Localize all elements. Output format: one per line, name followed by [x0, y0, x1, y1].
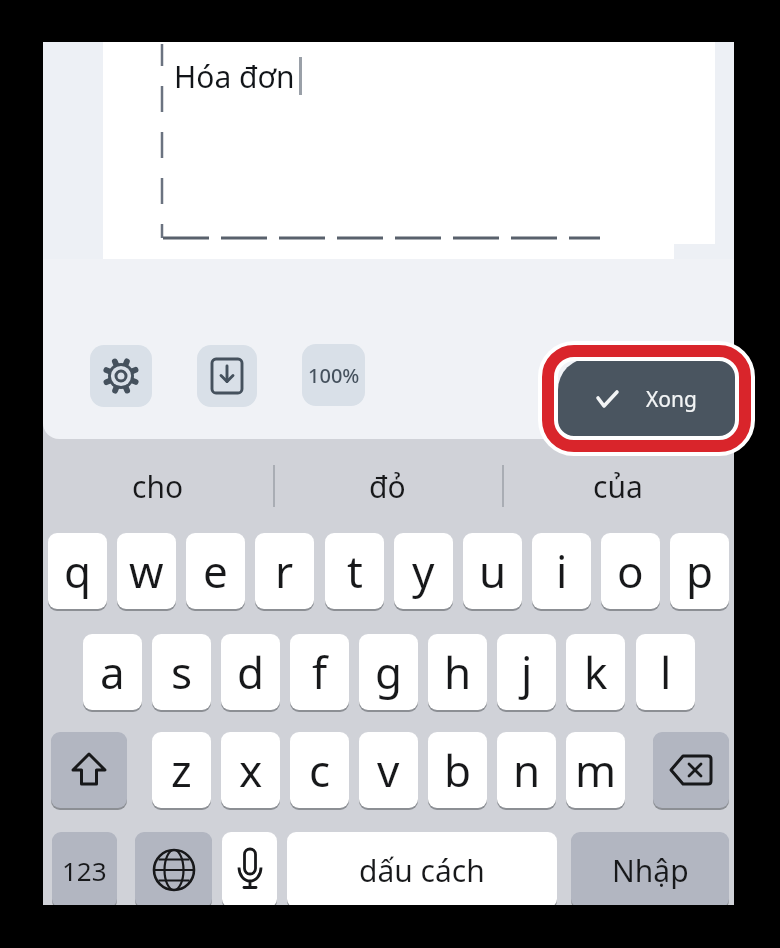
staticText: đỏ — [369, 466, 406, 507]
button[interactable]: c — [290, 732, 349, 808]
staticText: x — [239, 740, 263, 800]
button[interactable]: e — [186, 533, 245, 609]
staticText: f — [312, 642, 328, 702]
button[interactable]: u — [463, 533, 522, 609]
staticText: z — [171, 740, 192, 800]
button[interactable]: dấu cách — [287, 832, 557, 908]
button[interactable]: Nhập — [571, 832, 729, 908]
staticText: e — [203, 541, 228, 601]
staticText: cho — [132, 466, 184, 507]
button[interactable] — [653, 732, 729, 808]
button[interactable]: của — [502, 460, 734, 512]
staticText: Hóa đơn — [174, 56, 295, 96]
staticText: g — [375, 642, 403, 702]
staticText: h — [444, 642, 472, 702]
button[interactable]: h — [428, 634, 487, 710]
staticText: i — [556, 541, 568, 601]
button[interactable]: 100% — [302, 344, 365, 406]
button[interactable]: z — [152, 732, 211, 808]
button[interactable]: o — [601, 533, 660, 609]
button[interactable]: cho — [43, 460, 273, 512]
staticText: Nhập — [612, 850, 689, 891]
staticText: 100% — [308, 362, 360, 389]
button[interactable]: d — [221, 634, 280, 710]
button[interactable] — [222, 832, 277, 908]
staticText: của — [593, 466, 643, 507]
button[interactable]: s — [152, 634, 211, 710]
staticText: m — [575, 740, 617, 800]
button[interactable]: p — [670, 533, 729, 609]
button[interactable]: l — [636, 634, 695, 710]
button[interactable]: f — [290, 634, 349, 710]
staticText: s — [171, 642, 193, 702]
button[interactable]: k — [566, 634, 625, 710]
button[interactable]: đỏ — [273, 460, 502, 512]
staticText: j — [521, 642, 533, 702]
button[interactable] — [90, 345, 152, 407]
staticText: t — [347, 541, 363, 601]
staticText: Xong — [646, 385, 697, 413]
staticText: y — [412, 541, 435, 601]
button[interactable]: 123 — [52, 832, 117, 908]
staticText: c — [309, 740, 331, 800]
staticText: o — [617, 541, 644, 601]
button[interactable]: n — [497, 732, 556, 808]
staticText: u — [479, 541, 507, 601]
staticText: b — [444, 740, 472, 800]
button[interactable] — [197, 345, 257, 407]
button[interactable]: j — [497, 634, 556, 710]
button[interactable]: w — [117, 533, 176, 609]
button[interactable]: b — [428, 732, 487, 808]
button[interactable] — [135, 832, 212, 908]
button[interactable]: i — [532, 533, 591, 609]
button[interactable]: r — [255, 533, 314, 609]
staticText: q — [64, 541, 92, 601]
button[interactable]: v — [359, 732, 418, 808]
button[interactable]: x — [221, 732, 280, 808]
staticText: 123 — [62, 853, 107, 888]
staticText: dấu cách — [359, 850, 485, 891]
button[interactable]: t — [325, 533, 384, 609]
staticText: n — [513, 740, 541, 800]
staticText: l — [660, 642, 672, 702]
staticText: d — [237, 642, 265, 702]
staticText: w — [129, 541, 164, 601]
button[interactable]: a — [83, 634, 142, 710]
staticText: v — [377, 740, 400, 800]
button[interactable]: m — [566, 732, 625, 808]
button[interactable] — [558, 358, 735, 441]
staticText: p — [686, 541, 714, 601]
button[interactable]: y — [394, 533, 453, 609]
staticText: a — [100, 642, 125, 702]
button[interactable] — [51, 732, 127, 808]
button[interactable]: q — [48, 533, 107, 609]
staticText: k — [584, 642, 608, 702]
staticText: r — [275, 541, 294, 601]
button[interactable]: g — [359, 634, 418, 710]
